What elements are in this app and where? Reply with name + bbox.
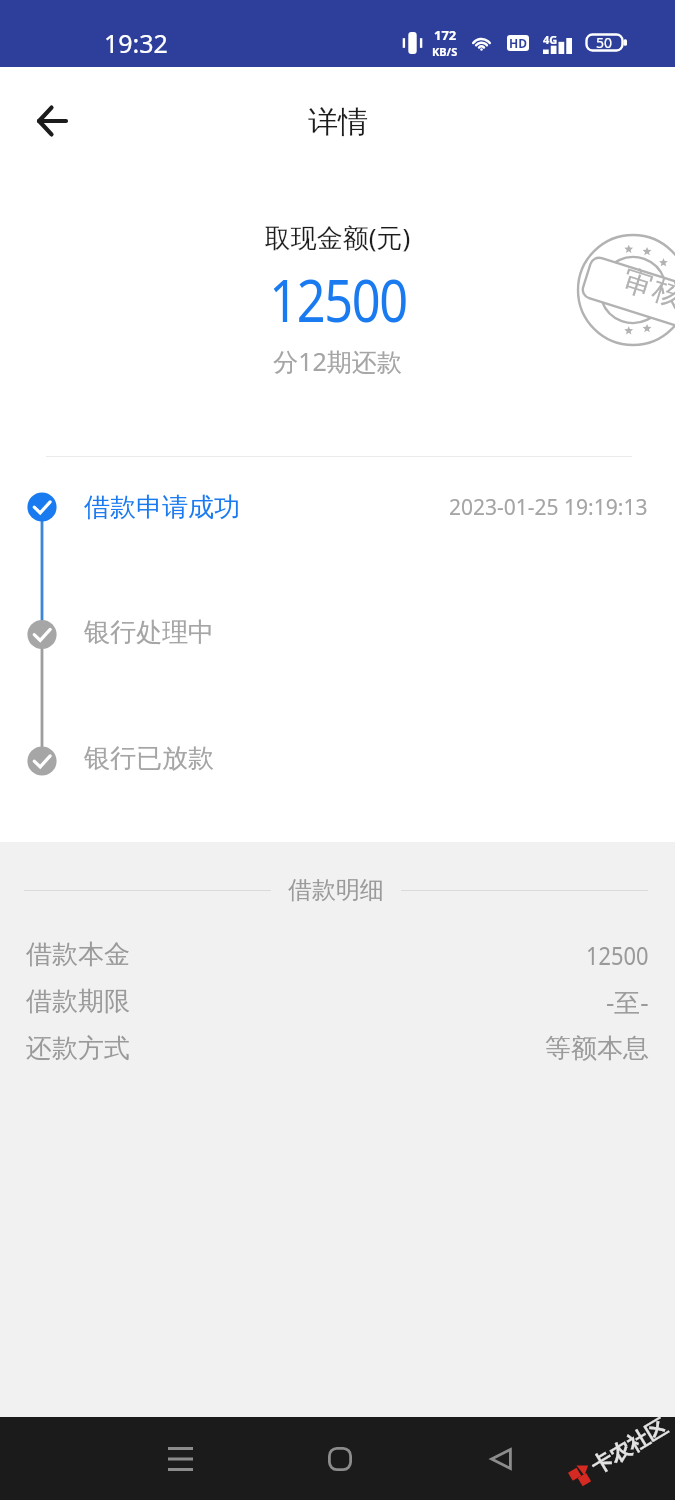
staticText: 借款期限 (26, 985, 130, 1018)
staticText: 分12期还款 (0, 344, 675, 378)
staticText: 取现金额(元) (0, 219, 675, 255)
staticText: -至- (606, 984, 649, 1020)
staticText: 借款本金 (26, 938, 130, 971)
staticText: 172 (434, 26, 457, 44)
staticText: 50 (596, 33, 613, 52)
button[interactable]: Recent apps (140, 1417, 220, 1500)
staticText: 12500 (586, 937, 649, 972)
button[interactable]: Back (16, 86, 86, 156)
button[interactable]: 还款方式 (0, 1025, 675, 1072)
button[interactable]: 借款期限 (0, 978, 675, 1025)
button[interactable]: Back (461, 1417, 541, 1500)
staticText: 借款明细 (288, 875, 384, 905)
staticText: 12500 (269, 260, 407, 339)
staticText: 还款方式 (26, 1032, 130, 1065)
button[interactable]: 银行已放款 (0, 726, 675, 790)
button[interactable]: Home (300, 1417, 380, 1500)
button[interactable]: 借款本金 (0, 931, 675, 978)
staticText: 银行处理中 (84, 616, 214, 649)
staticText: 等额本息 (545, 1032, 649, 1065)
staticText: 银行已放款 (84, 742, 214, 775)
staticText: 4G (543, 32, 558, 47)
staticText: HD (509, 35, 527, 51)
staticText: 审核中 (617, 261, 675, 324)
staticText: 详情 (308, 103, 368, 141)
staticText: 借款申请成功 (84, 491, 240, 524)
staticText: 卡农社区 (586, 1414, 672, 1479)
staticText: 2023-01-25 19:19:13 (449, 493, 648, 522)
button[interactable]: 银行处理中 (0, 600, 675, 664)
staticText: KB/S (432, 44, 458, 59)
button[interactable]: 借款申请成功 (0, 475, 675, 539)
staticText: 19:32 (104, 26, 168, 60)
